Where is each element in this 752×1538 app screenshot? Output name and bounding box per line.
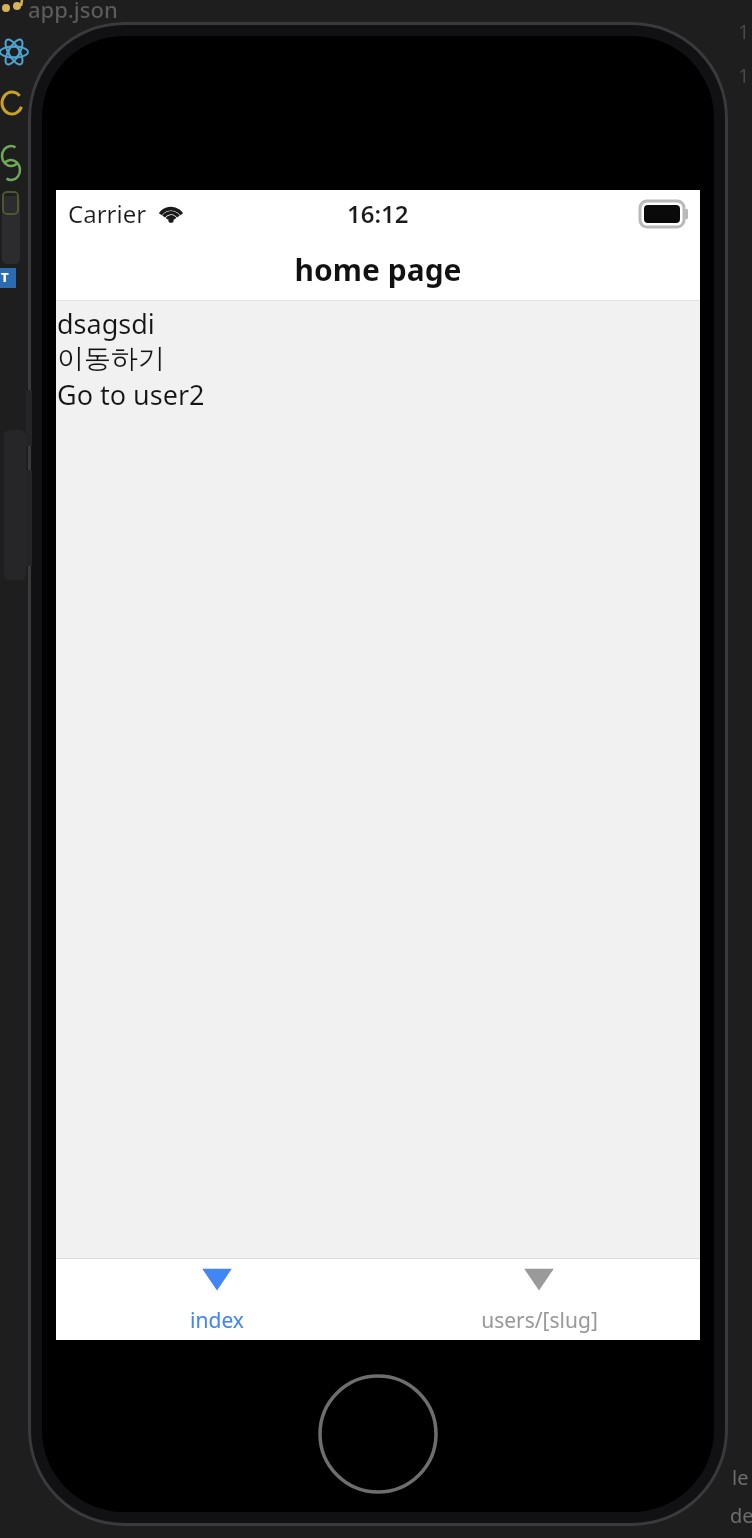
staticText: index xyxy=(190,1306,244,1335)
button[interactable]: 이동하기 xyxy=(57,342,165,376)
other: users/[slug] xyxy=(521,1267,557,1297)
other: index xyxy=(199,1267,235,1297)
staticText: Carrier xyxy=(68,197,147,230)
staticText: T xyxy=(1,268,9,286)
staticText: de xyxy=(730,1502,752,1529)
staticText: home page xyxy=(294,249,462,290)
button[interactable]: users/[slug] xyxy=(378,1259,700,1340)
staticText: app.json xyxy=(28,0,118,24)
staticText: 16:12 xyxy=(347,197,409,230)
button[interactable]: Go to user2 xyxy=(57,376,205,413)
staticText: users/[slug] xyxy=(481,1306,598,1335)
staticText: le xyxy=(732,1464,749,1491)
staticText: 1 xyxy=(738,18,750,45)
staticText: 1 xyxy=(738,62,750,89)
staticText: dsagsdi xyxy=(57,305,155,342)
button[interactable]: index xyxy=(56,1259,378,1340)
